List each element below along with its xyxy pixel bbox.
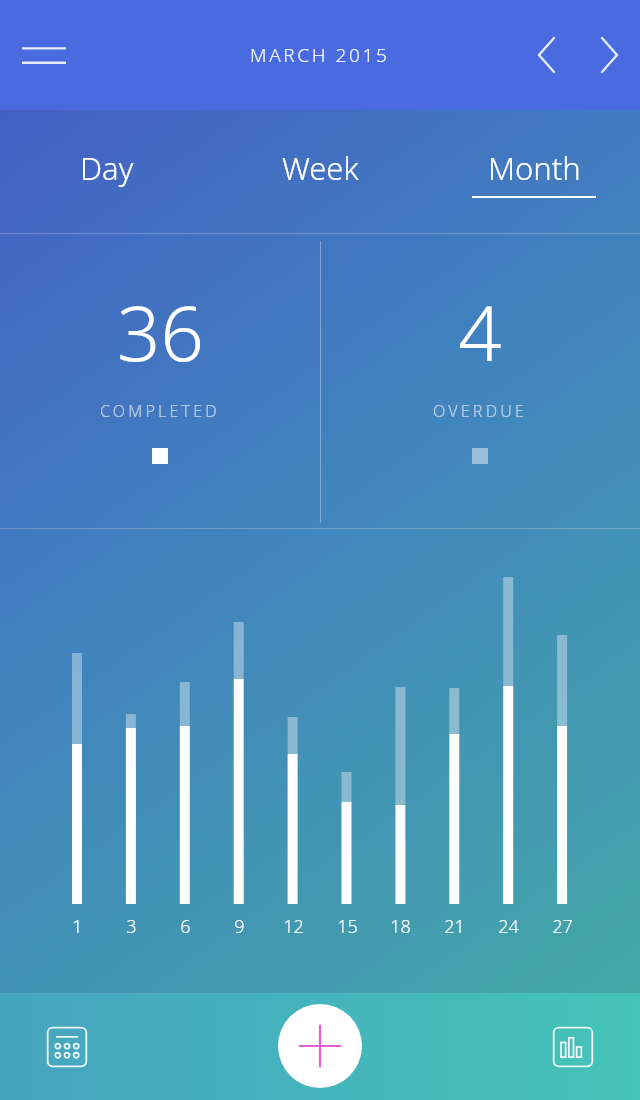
button[interactable]: Month [427, 110, 640, 234]
staticText: 12 [283, 914, 304, 939]
button[interactable]: Statistics [542, 1016, 604, 1078]
staticText: Week [282, 147, 359, 189]
staticText: 3 [126, 914, 137, 939]
staticText: OVERDUE [433, 400, 528, 422]
button[interactable]: Day [0, 110, 214, 234]
staticText: Month [488, 147, 581, 189]
button[interactable]: Calendar [36, 1016, 98, 1078]
staticText: 1 [72, 914, 83, 939]
staticText: 15 [337, 914, 358, 939]
button[interactable]: Week [214, 110, 427, 234]
button[interactable]: Previous month [516, 24, 578, 86]
staticText: 24 [498, 914, 519, 939]
staticText: 36 [117, 280, 204, 384]
staticText: 18 [390, 914, 411, 939]
staticText: Day [80, 147, 134, 189]
staticText: 6 [180, 914, 191, 939]
button[interactable]: Menu [8, 19, 80, 91]
staticText: 4 [458, 280, 502, 384]
staticText: 21 [444, 914, 465, 939]
staticText: COMPLETED [100, 400, 220, 422]
button[interactable]: 36 [0, 234, 320, 464]
button[interactable]: Add task [278, 1004, 362, 1088]
staticText: 27 [552, 914, 573, 939]
button[interactable]: 4 [320, 234, 640, 464]
staticText: MARCH 2015 [250, 42, 390, 68]
staticText: 9 [234, 914, 245, 939]
button[interactable]: Next month [578, 24, 640, 86]
